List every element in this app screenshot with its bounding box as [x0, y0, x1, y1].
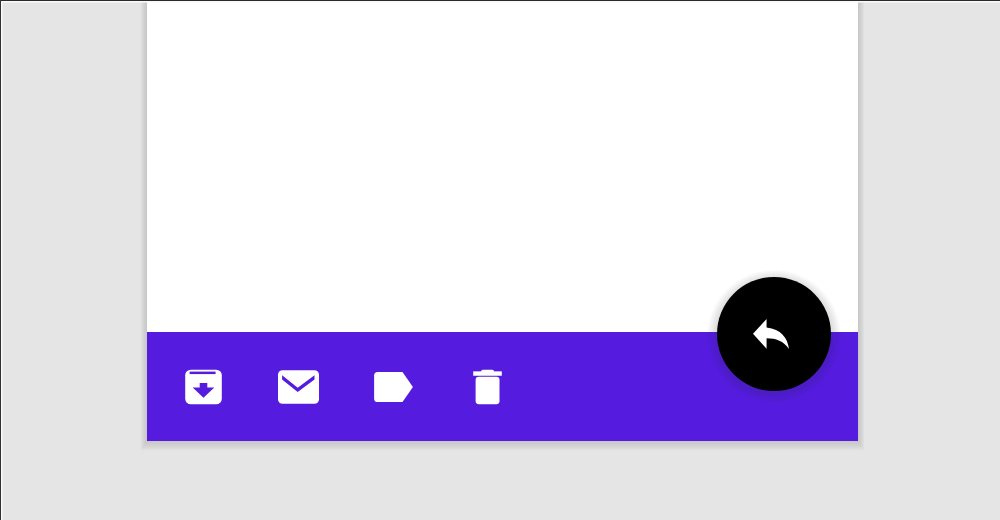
button[interactable]: Mail	[250, 332, 344, 441]
button[interactable]: Reply	[717, 277, 831, 391]
button[interactable]: Delete	[438, 332, 532, 441]
button[interactable]: Archive	[156, 332, 250, 441]
button[interactable]: Label	[344, 332, 438, 441]
